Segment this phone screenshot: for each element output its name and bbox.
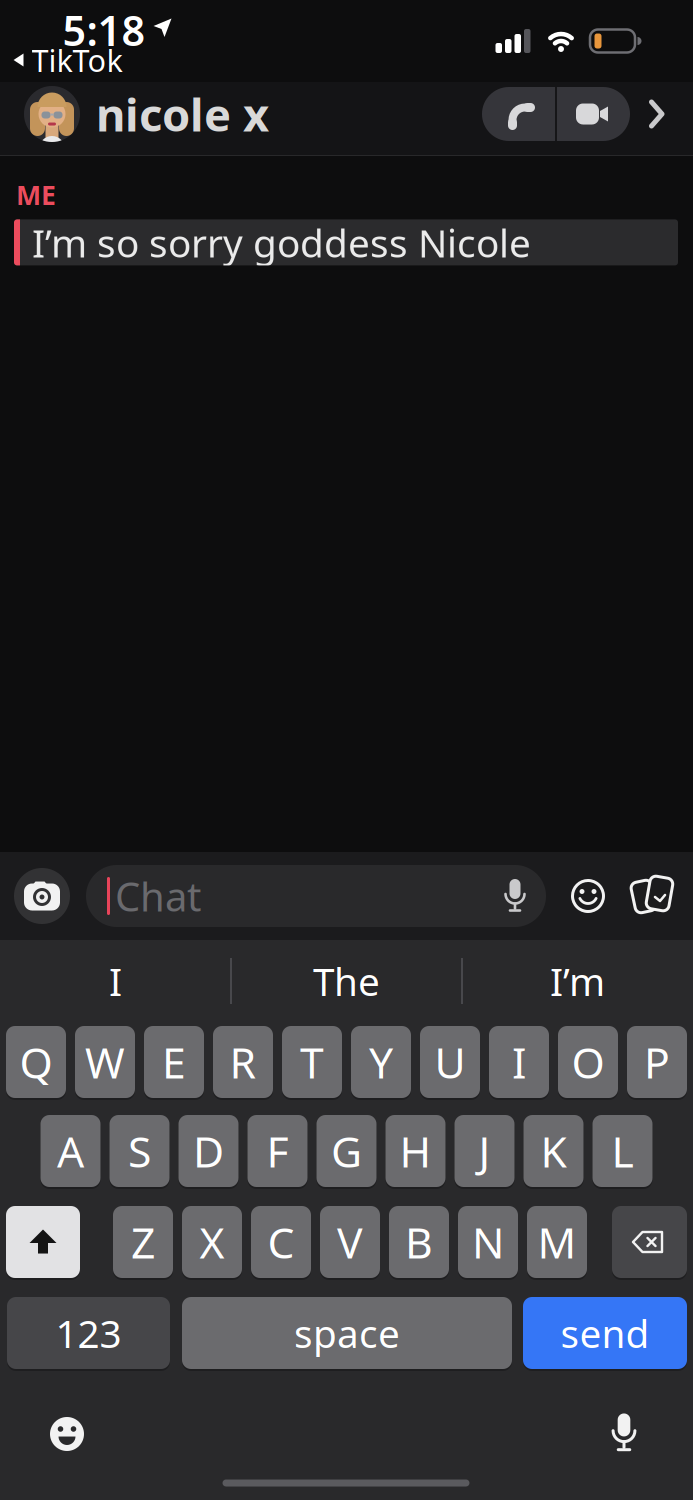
staticText: O bbox=[571, 1034, 604, 1090]
staticText: F bbox=[266, 1123, 288, 1179]
staticText: U bbox=[434, 1034, 465, 1090]
button[interactable]: E bbox=[144, 1026, 204, 1098]
staticText: D bbox=[193, 1123, 224, 1179]
staticText: nicole x bbox=[96, 84, 269, 144]
staticText: H bbox=[399, 1123, 431, 1179]
button[interactable] bbox=[24, 86, 80, 142]
button[interactable]: D bbox=[178, 1115, 238, 1187]
button[interactable]: 123 bbox=[7, 1297, 170, 1369]
staticText: B bbox=[405, 1214, 433, 1270]
staticText: I’m so sorry goddess Nicole bbox=[32, 217, 531, 268]
button[interactable]: Chat bbox=[86, 865, 546, 927]
button[interactable] bbox=[649, 99, 665, 129]
staticText: S bbox=[128, 1123, 151, 1179]
staticText: send bbox=[560, 1307, 649, 1359]
staticText: T bbox=[300, 1034, 324, 1090]
button[interactable]: space bbox=[182, 1297, 512, 1369]
staticText: I’m bbox=[550, 955, 605, 1007]
button[interactable]: N bbox=[458, 1206, 518, 1278]
button[interactable] bbox=[14, 868, 70, 924]
button[interactable] bbox=[482, 87, 630, 141]
button[interactable]: P bbox=[627, 1026, 687, 1098]
staticText: TikTok bbox=[31, 40, 122, 80]
staticText: K bbox=[540, 1123, 566, 1179]
staticText: P bbox=[644, 1034, 670, 1090]
button[interactable] bbox=[48, 1415, 85, 1452]
button[interactable]: The bbox=[231, 940, 462, 1022]
button[interactable]: M bbox=[527, 1206, 587, 1278]
button[interactable]: I bbox=[489, 1026, 549, 1098]
button[interactable] bbox=[569, 877, 607, 915]
button[interactable]: A bbox=[40, 1115, 100, 1187]
button[interactable]: Z bbox=[113, 1206, 173, 1278]
staticText: E bbox=[162, 1034, 186, 1090]
button[interactable]: I bbox=[0, 940, 231, 1022]
staticText: space bbox=[294, 1307, 400, 1359]
button[interactable]: V bbox=[320, 1206, 380, 1278]
staticText: I bbox=[512, 1034, 526, 1090]
staticText: L bbox=[611, 1123, 633, 1179]
staticText: The bbox=[313, 955, 380, 1007]
staticText: Chat bbox=[115, 869, 201, 922]
button[interactable]: send bbox=[523, 1297, 687, 1369]
button[interactable]: O bbox=[558, 1026, 618, 1098]
staticText: N bbox=[472, 1214, 504, 1270]
staticText: 5:18 bbox=[62, 3, 145, 57]
staticText: Z bbox=[131, 1214, 155, 1270]
staticText: W bbox=[85, 1034, 125, 1090]
button[interactable]: U bbox=[420, 1026, 480, 1098]
button[interactable] bbox=[612, 1206, 687, 1278]
button[interactable]: J bbox=[454, 1115, 514, 1187]
button[interactable]: R bbox=[213, 1026, 273, 1098]
staticText: G bbox=[331, 1123, 362, 1179]
button[interactable]: G bbox=[316, 1115, 376, 1187]
staticText: A bbox=[57, 1123, 84, 1179]
button[interactable]: F bbox=[247, 1115, 307, 1187]
button[interactable] bbox=[6, 1206, 80, 1278]
button[interactable]: Q bbox=[6, 1026, 66, 1098]
button[interactable]: L bbox=[592, 1115, 652, 1187]
button[interactable]: B bbox=[389, 1206, 449, 1278]
staticText: Y bbox=[369, 1034, 393, 1090]
button[interactable]: X bbox=[182, 1206, 242, 1278]
staticText: 123 bbox=[55, 1307, 121, 1359]
staticText: C bbox=[267, 1214, 294, 1270]
staticText: ME bbox=[16, 177, 56, 212]
button[interactable]: K bbox=[523, 1115, 583, 1187]
button[interactable] bbox=[632, 874, 676, 918]
button[interactable]: Y bbox=[351, 1026, 411, 1098]
button[interactable] bbox=[610, 1413, 638, 1452]
button[interactable]: C bbox=[251, 1206, 311, 1278]
staticText: V bbox=[337, 1214, 363, 1270]
button[interactable]: H bbox=[385, 1115, 445, 1187]
staticText: X bbox=[199, 1214, 224, 1270]
staticText: Q bbox=[19, 1034, 52, 1090]
staticText: R bbox=[229, 1034, 256, 1090]
button[interactable]: W bbox=[75, 1026, 135, 1098]
staticText: I bbox=[109, 955, 122, 1007]
staticText: M bbox=[537, 1214, 576, 1270]
button[interactable]: T bbox=[282, 1026, 342, 1098]
button[interactable]: I’m bbox=[462, 940, 693, 1022]
staticText: J bbox=[478, 1123, 490, 1179]
button[interactable]: S bbox=[109, 1115, 169, 1187]
